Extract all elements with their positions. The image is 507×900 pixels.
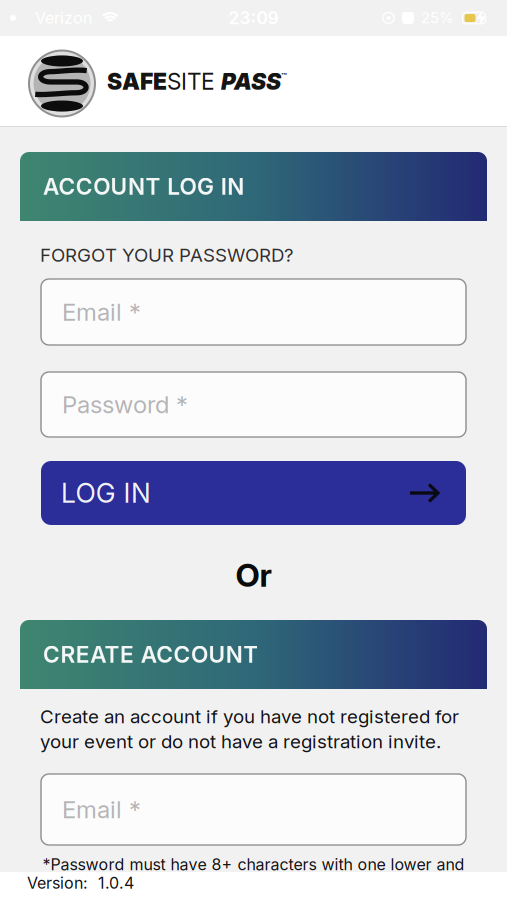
staticText: Verizon [35, 9, 92, 27]
staticText: SAFE [107, 68, 167, 95]
button[interactable]: CREATE ACCOUNT [20, 620, 487, 689]
staticText: Create an account if you have not regist… [40, 705, 459, 727]
staticText: Password * [62, 390, 188, 419]
staticText: ™ [281, 71, 287, 82]
staticText: Email * [62, 298, 141, 326]
staticText: ACCOUNT LOG IN [43, 173, 244, 200]
staticText: LOG IN [61, 477, 151, 509]
staticText: your event or do not have a registration… [40, 730, 441, 752]
staticText: *Password must have 8+ characters with o… [42, 855, 464, 874]
staticText: 25% [421, 9, 453, 27]
staticText: Email * [62, 795, 141, 824]
staticText: 23:09 [228, 8, 278, 28]
button[interactable]: Password * [41, 372, 466, 437]
button[interactable]: Email * [41, 774, 466, 845]
staticText: Or [235, 556, 271, 594]
button[interactable]: Email * [41, 279, 466, 345]
staticText: FORGOT YOUR PASSWORD? [40, 244, 294, 266]
staticText: PASS [221, 68, 281, 95]
staticText: Version: 1.0.4 [27, 874, 134, 892]
staticText: CREATE ACCOUNT [43, 641, 258, 668]
button[interactable]: LOG IN [41, 461, 466, 525]
button[interactable]: ACCOUNT LOG IN [20, 152, 487, 221]
staticText: SITE [167, 68, 215, 95]
button[interactable]: FORGOT YOUR PASSWORD? [40, 244, 294, 266]
